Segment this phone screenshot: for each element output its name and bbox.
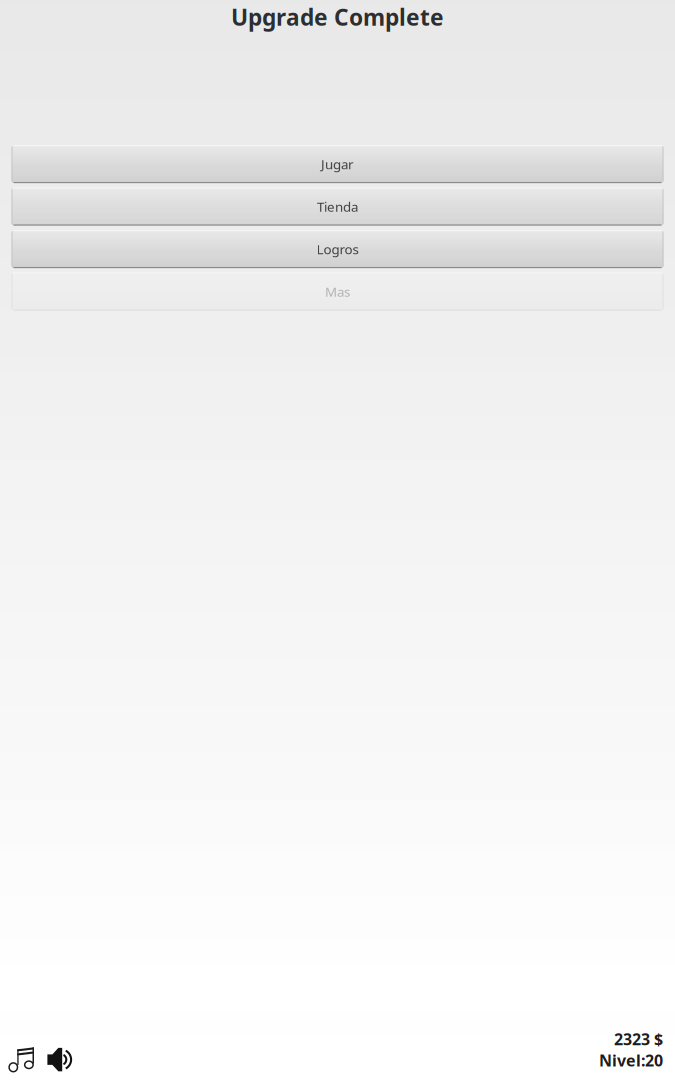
staticText: Nivel:20 — [599, 1050, 663, 1071]
staticText: Mas — [325, 283, 350, 300]
staticText: Tienda — [317, 198, 358, 215]
button[interactable]: Sound — [47, 1044, 73, 1071]
staticText: 2323 $ — [614, 1028, 663, 1050]
button[interactable]: Jugar — [11, 145, 663, 183]
button[interactable]: Tienda — [11, 188, 663, 226]
button[interactable]: Mas — [11, 273, 663, 311]
button[interactable]: Music — [8, 1041, 36, 1071]
staticText: Logros — [316, 240, 358, 258]
staticText: Upgrade Complete — [231, 2, 444, 32]
button[interactable]: Logros — [11, 230, 663, 268]
staticText: Jugar — [321, 155, 354, 173]
